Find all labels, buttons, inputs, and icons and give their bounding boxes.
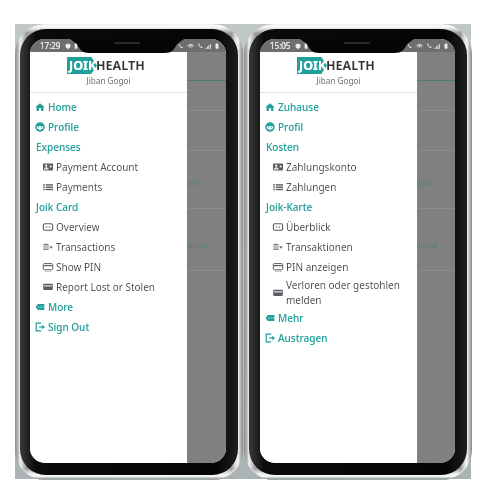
button[interactable]: Report Lost or Stolen [30, 277, 187, 297]
staticText: Show PIN [56, 260, 102, 274]
staticText: mited [188, 241, 208, 251]
staticText: Zahlungen [286, 180, 337, 194]
staticText: Profile [48, 120, 79, 134]
staticText: 15:05 [270, 40, 291, 51]
button[interactable]: Profile [30, 117, 187, 137]
button[interactable]: Zahlungskonto [260, 157, 417, 177]
staticText: 17:29 [40, 40, 61, 51]
staticText: Joik Card [36, 200, 79, 214]
button[interactable]: Kosten [260, 137, 417, 157]
staticText: Transactions [56, 240, 116, 254]
button[interactable]: Transactions [30, 237, 187, 257]
staticText: JOIK [299, 57, 327, 74]
staticText: Verloren oder gestohlen melden [286, 278, 417, 307]
button[interactable]: Joik Card [30, 197, 187, 217]
staticText: Overview [56, 220, 100, 234]
staticText: Austragen [278, 331, 328, 345]
button[interactable]: More [30, 297, 187, 317]
staticText: Kosten [266, 140, 300, 154]
button[interactable]: Überblick [260, 217, 417, 237]
staticText: Payment Account [56, 160, 139, 174]
button[interactable]: Overview [30, 217, 187, 237]
staticText: JOIK [69, 57, 97, 74]
button[interactable]: Transaktionen [260, 237, 417, 257]
staticText: Report Lost or Stolen [56, 280, 156, 294]
button[interactable]: Joik-Karte [260, 197, 417, 217]
staticText: Transaktionen [286, 240, 353, 254]
button[interactable]: Payments [30, 177, 187, 197]
staticText: Zuhause [278, 100, 319, 114]
staticText: Home [48, 100, 77, 114]
staticText: HEALTH [96, 57, 145, 74]
staticText: Zahlungskonto [286, 160, 357, 174]
staticText: Jiban Gogoi [30, 75, 187, 86]
button[interactable]: Austragen [260, 328, 417, 348]
button[interactable]: Payment Account [30, 157, 187, 177]
staticText: Jiban Gogoi [260, 75, 417, 86]
button[interactable]: Zahlungen [260, 177, 417, 197]
staticText: More [48, 300, 74, 314]
button[interactable]: Home [30, 97, 187, 117]
button[interactable]: Expenses [30, 137, 187, 157]
button[interactable]: Sign Out [30, 317, 187, 337]
staticText: Profil [278, 120, 304, 134]
button[interactable]: Profil [260, 117, 417, 137]
button[interactable]: Zuhause [260, 97, 417, 117]
staticText: Überblick [286, 220, 331, 234]
staticText: Joik-Karte [266, 200, 313, 214]
staticText: PIN anzeigen [286, 260, 349, 274]
staticText: Mehr [278, 311, 304, 325]
staticText: mited [418, 241, 438, 251]
staticText: pital [188, 178, 203, 188]
staticText: pital [418, 178, 433, 188]
staticText: Sign Out [48, 320, 90, 334]
button[interactable]: Verloren oder gestohlen melden [260, 277, 417, 308]
staticText: HEALTH [326, 57, 375, 74]
button[interactable]: PIN anzeigen [260, 257, 417, 277]
staticText: Payments [56, 180, 103, 194]
button[interactable]: Show PIN [30, 257, 187, 277]
button[interactable]: Mehr [260, 308, 417, 328]
staticText: Expenses [36, 140, 81, 154]
